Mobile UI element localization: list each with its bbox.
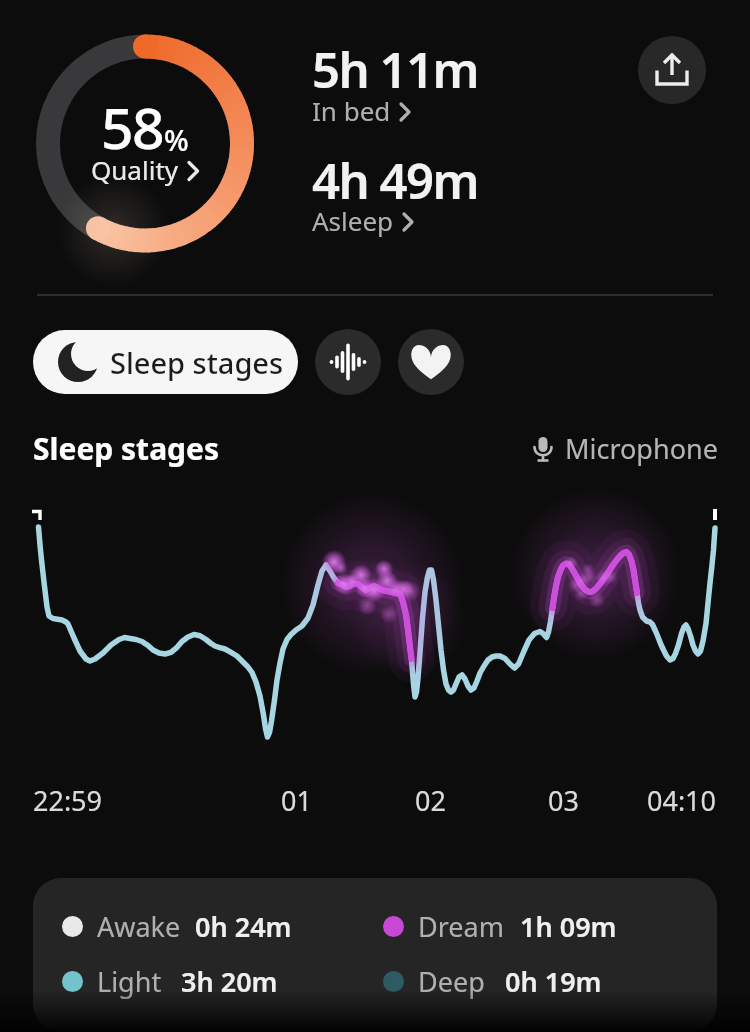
button[interactable]: Awake: [33, 878, 717, 1032]
staticText: 22:59: [33, 782, 103, 819]
staticText: 0h 19m: [505, 963, 602, 999]
button[interactable]: [398, 329, 464, 395]
staticText: Sleep stages: [110, 343, 284, 382]
staticText: 04:10: [647, 782, 717, 819]
staticText: Sleep stages: [33, 428, 220, 469]
staticText: 1h 09m: [520, 908, 617, 944]
staticText: Asleep: [312, 203, 394, 238]
staticText: Deep: [418, 963, 485, 999]
staticText: Quality: [91, 152, 179, 187]
staticText: Dream: [418, 908, 504, 944]
button[interactable]: Sleep stages: [33, 330, 298, 394]
staticText: 01: [281, 782, 312, 819]
button[interactable]: In bed: [312, 93, 410, 128]
button[interactable]: [60, 95, 230, 205]
staticText: %: [164, 120, 189, 159]
staticText: 02: [415, 782, 446, 819]
button[interactable]: [638, 36, 706, 104]
staticText: 03: [548, 782, 579, 819]
button[interactable]: Microphone: [531, 430, 718, 467]
staticText: Microphone: [565, 430, 718, 467]
staticText: 3h 20m: [181, 963, 278, 999]
staticText: Awake: [97, 908, 181, 944]
staticText: Light: [97, 963, 162, 999]
staticText: 4h 49m: [312, 147, 479, 214]
button[interactable]: Asleep: [312, 203, 413, 238]
staticText: 0h 24m: [195, 908, 292, 944]
staticText: 58: [101, 88, 164, 166]
button[interactable]: [315, 329, 381, 395]
staticText: 5h 11m: [312, 36, 479, 103]
staticText: In bed: [312, 93, 391, 128]
